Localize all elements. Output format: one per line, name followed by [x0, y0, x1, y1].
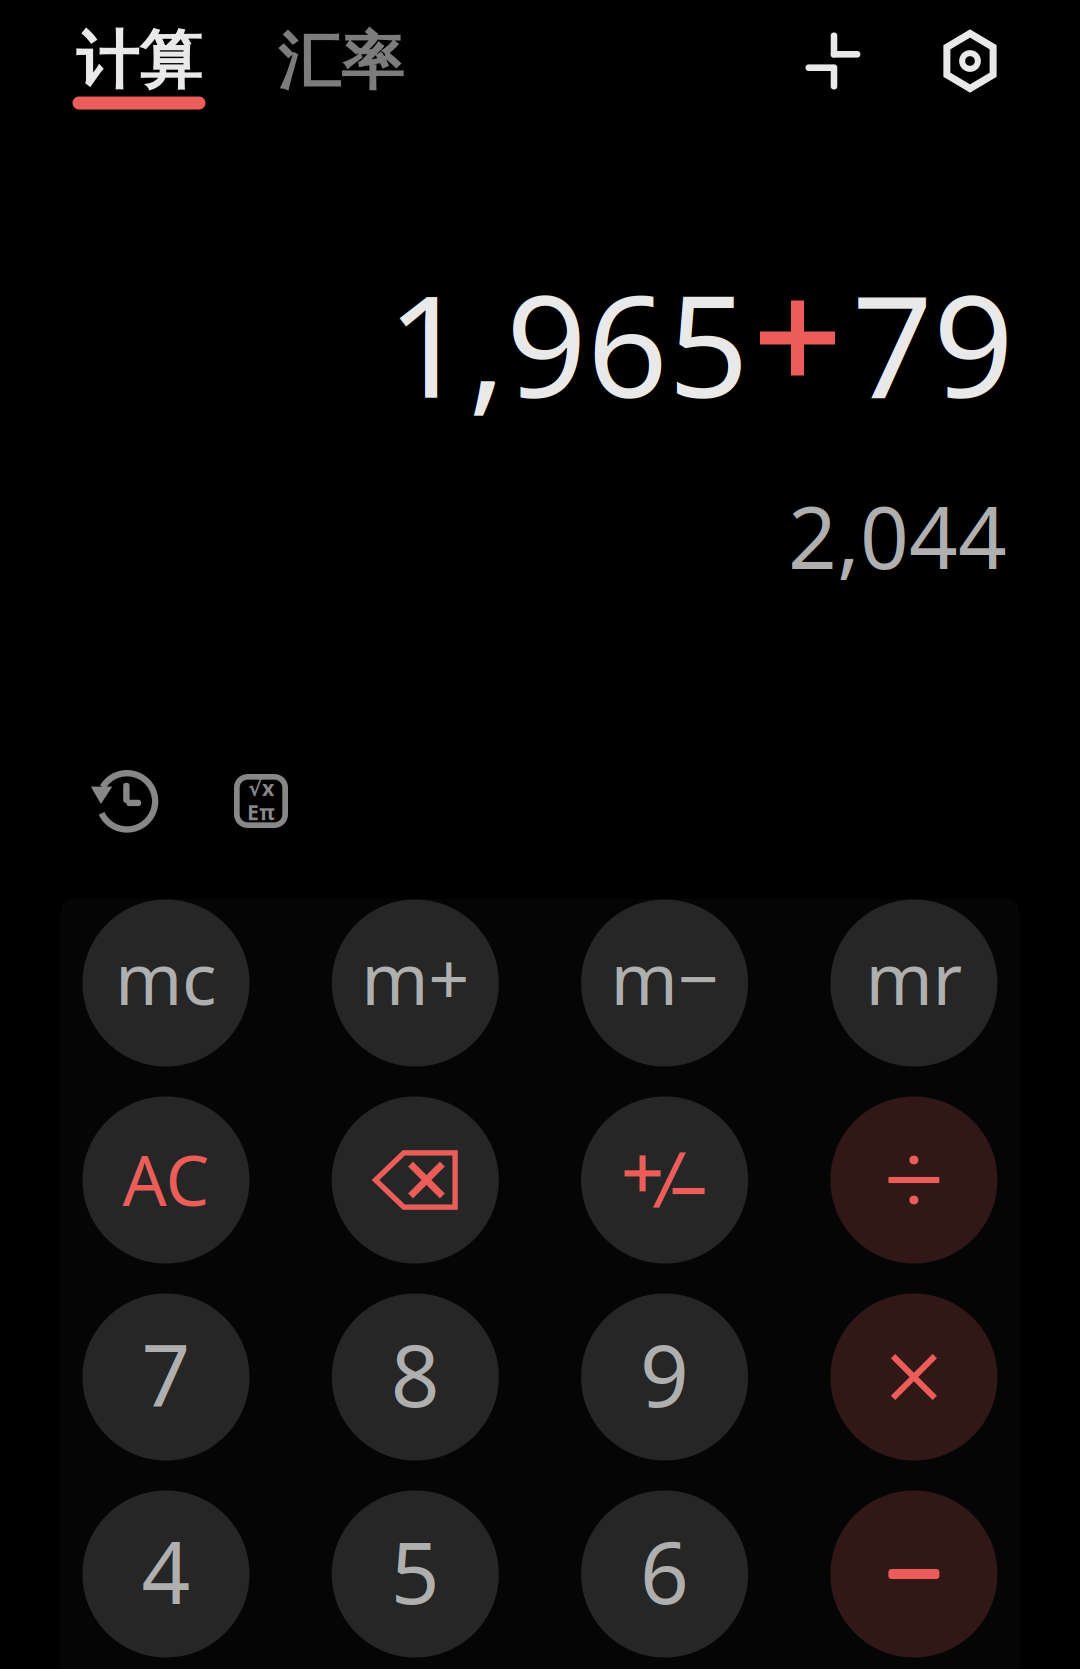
staticText: 4: [141, 1514, 190, 1628]
staticText: 79: [852, 249, 1014, 437]
button[interactable]: m−: [581, 899, 748, 1066]
button[interactable]: Scientific mode: [209, 749, 313, 853]
button[interactable]: Divide: [830, 1096, 997, 1263]
staticText: Eπ: [247, 798, 275, 826]
button[interactable]: m+: [332, 899, 499, 1066]
staticText: mr: [865, 929, 962, 1025]
button[interactable]: History: [71, 748, 175, 852]
button[interactable]: 4: [82, 1490, 249, 1657]
staticText: 8: [391, 1317, 440, 1431]
button[interactable]: AC: [82, 1096, 249, 1263]
staticText: 6: [640, 1514, 689, 1628]
button[interactable]: 计算: [39, 10, 239, 130]
button[interactable]: 6: [581, 1490, 748, 1657]
staticText: m−: [611, 929, 719, 1025]
staticText: 汇率: [278, 23, 404, 100]
staticText: 1,965: [387, 249, 749, 437]
button[interactable]: 8: [332, 1293, 499, 1460]
staticText: 9: [640, 1317, 689, 1431]
staticText: AC: [122, 1133, 209, 1225]
button[interactable]: 9: [581, 1293, 748, 1460]
staticText: 7: [141, 1317, 190, 1431]
button[interactable]: mr: [830, 899, 997, 1066]
staticText: 5: [391, 1514, 440, 1628]
button[interactable]: 5: [332, 1490, 499, 1657]
button[interactable]: Toggle sign: [581, 1096, 748, 1263]
button[interactable]: 汇率: [241, 2, 441, 122]
staticText: m+: [361, 929, 469, 1025]
button[interactable]: Floating window: [782, 9, 886, 113]
staticText: mc: [115, 929, 217, 1025]
button[interactable]: 7: [82, 1293, 249, 1460]
button[interactable]: mc: [82, 899, 249, 1066]
button[interactable]: Subtract: [830, 1490, 997, 1657]
staticText: √x: [248, 774, 274, 802]
staticText: 计算: [76, 22, 202, 99]
button[interactable]: Delete: [332, 1096, 499, 1263]
button[interactable]: Multiply: [830, 1293, 997, 1460]
button[interactable]: Settings: [918, 9, 1022, 113]
staticText: 2,044: [788, 479, 1007, 593]
